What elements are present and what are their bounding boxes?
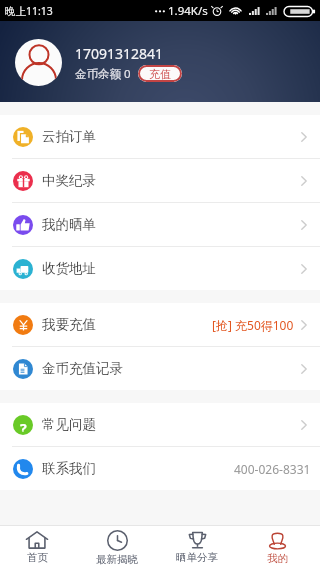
staticText: 常见问题 [42, 416, 96, 433]
button[interactable]: 中奖纪录 [0, 159, 320, 202]
staticText: 收货地址 [42, 260, 96, 277]
staticText: ? [20, 419, 27, 432]
button[interactable]: 充值 [138, 65, 182, 82]
staticText: 我的晒单 [42, 216, 96, 233]
staticText: 金币余额 0 [75, 66, 131, 82]
staticText: 晚上11:13 [5, 4, 53, 18]
staticText: 1.94K/s [168, 3, 208, 19]
staticText: 我要充值 [42, 316, 96, 333]
staticText: 17091312841 [75, 44, 164, 63]
staticText: 首页 [27, 551, 48, 564]
button[interactable]: ? [0, 403, 320, 446]
staticText: 最新揭晓 [96, 553, 138, 566]
button[interactable]: 金币充值记录 [0, 347, 320, 390]
button[interactable]: 17091312841 [0, 21, 320, 102]
staticText: 我的 [267, 552, 288, 565]
staticText: 中奖纪录 [42, 172, 96, 189]
staticText: [抢] 充50得100 [212, 317, 294, 333]
button[interactable]: 联系我们 [0, 447, 320, 490]
staticText: 云拍订单 [42, 128, 96, 145]
button[interactable]: 云拍订单 [0, 115, 320, 158]
staticText: 晒单分享 [176, 551, 218, 564]
staticText: 金币充值记录 [42, 360, 123, 377]
button[interactable]: Share [157, 526, 237, 569]
button[interactable]: 我要充值 [0, 303, 320, 346]
button[interactable]: 收货地址 [0, 247, 320, 290]
staticText: 充值 [149, 67, 171, 81]
button[interactable]: 我的晒单 [0, 203, 320, 246]
button[interactable]: Latest [77, 526, 157, 569]
button[interactable]: Home [0, 526, 77, 569]
staticText: 联系我们 [42, 460, 96, 477]
staticText: 400-026-8331 [234, 461, 311, 477]
button[interactable]: Mine [237, 526, 317, 569]
